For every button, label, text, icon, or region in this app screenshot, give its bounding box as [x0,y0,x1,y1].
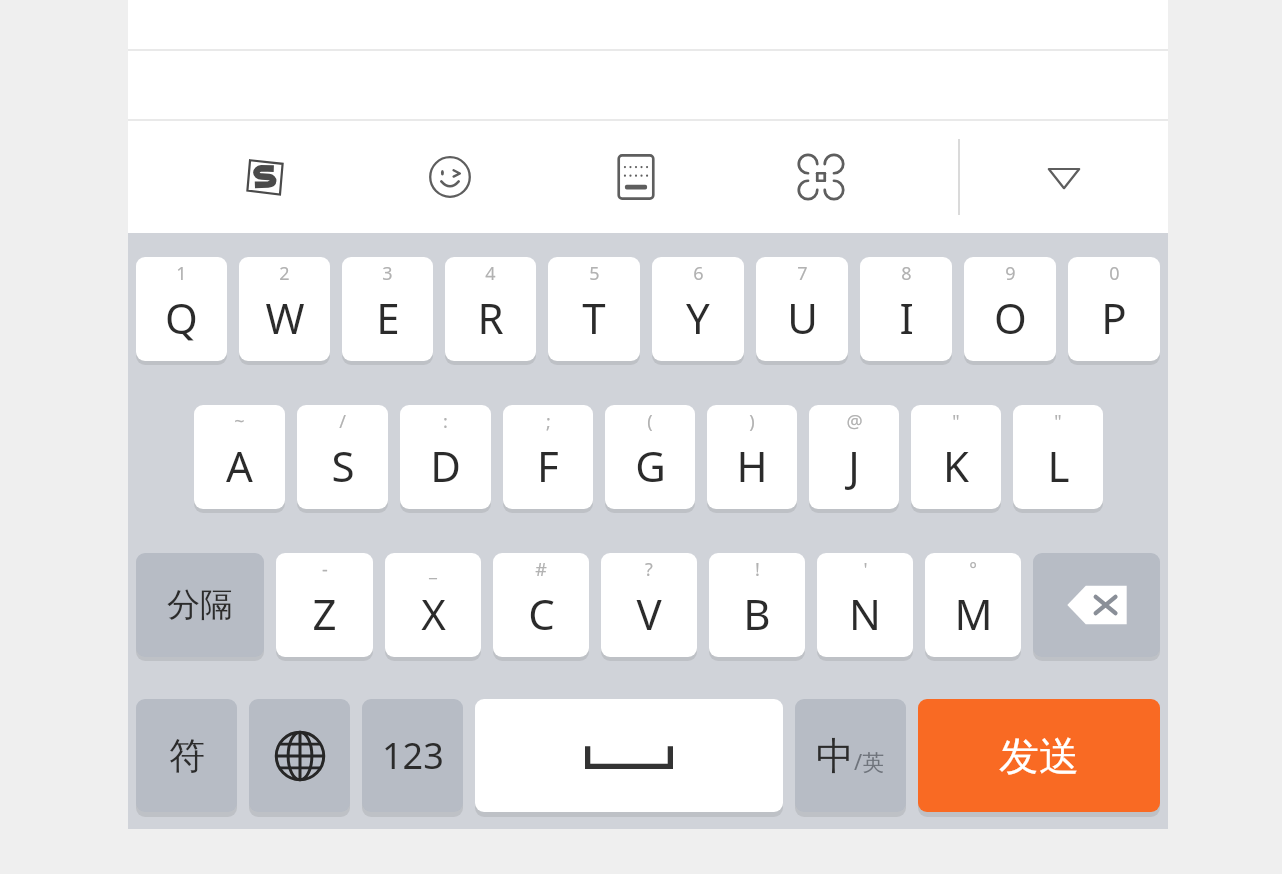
button[interactable]: Sogou input method [217,129,313,225]
button[interactable]: 7 [756,257,848,361]
staticText: V [636,585,662,642]
staticText: ) [749,409,755,434]
button[interactable]: 8 [860,257,952,361]
staticText: 1 [176,261,187,286]
button[interactable]: 9 [964,257,1056,361]
staticText: R [477,289,504,346]
button[interactable]: ; [503,405,593,509]
staticText: Q [165,289,198,346]
button[interactable]: 发送 [918,699,1160,812]
button[interactable]: Backspace [1033,553,1160,657]
button[interactable]: " [911,405,1001,509]
staticText: K [943,437,969,494]
button[interactable]: 0 [1068,257,1160,361]
staticText: S [331,437,355,494]
button[interactable]: Switch language [249,699,350,812]
button[interactable]: 符 [136,699,237,812]
staticText: " [1054,409,1062,434]
staticText: L [1047,437,1070,494]
staticText: _ [429,557,437,582]
button[interactable]: : [400,405,491,509]
button[interactable]: ? [601,553,697,657]
button[interactable]: 123 [362,699,463,812]
button[interactable]: ~ [194,405,285,509]
staticText: E [376,289,400,346]
staticText: Y [686,289,710,346]
button[interactable]: 1 [136,257,227,361]
staticText: 7 [797,261,808,286]
staticText: C [528,585,555,642]
staticText: 4 [485,261,496,286]
staticText: : [443,409,448,434]
staticText: 分隔 [167,584,233,626]
button[interactable]: ( [605,405,695,509]
staticText: J [848,437,860,494]
staticText: N [849,585,881,642]
staticText: ° [969,557,977,582]
button[interactable]: ) [707,405,797,509]
staticText: X [421,585,446,642]
staticText: " [952,409,960,434]
button[interactable]: 4 [445,257,536,361]
button[interactable]: Hide keyboard [1016,129,1112,225]
button[interactable]: 5 [548,257,640,361]
staticText: ' [863,557,868,582]
staticText: ? [645,557,653,582]
button[interactable]: 2 [239,257,330,361]
staticText: 123 [382,731,444,780]
button[interactable]: ° [925,553,1021,657]
staticText: 5 [589,261,600,286]
button[interactable]: ! [709,553,805,657]
staticText: G [635,437,666,494]
button[interactable]: 3 [342,257,433,361]
button[interactable]: # [493,553,589,657]
staticText: ! [755,557,760,582]
staticText: 2 [279,261,290,286]
button[interactable]: ' [817,553,913,657]
staticText: 中 [816,732,854,780]
button[interactable]: / [297,405,388,509]
button[interactable]: Chinese English toggle [795,699,906,812]
staticText: ( [647,409,653,434]
staticText: ; [546,409,551,434]
staticText: D [430,437,461,494]
button[interactable]: 6 [652,257,744,361]
staticText: A [226,437,253,494]
staticText: I [899,289,914,346]
staticText: W [265,289,305,346]
button[interactable]: More functions [773,129,869,225]
staticText: /英 [854,746,885,776]
staticText: Z [312,585,337,642]
staticText: P [1101,289,1127,346]
staticText: T [582,289,606,346]
staticText: 8 [901,261,912,286]
staticText: O [994,289,1027,346]
staticText: / [339,409,346,434]
button[interactable]: - [276,553,373,657]
staticText: H [736,437,768,494]
button[interactable]: Space [475,699,783,812]
button[interactable]: Keyboard layout [588,129,684,225]
staticText: M [954,585,993,642]
staticText: 9 [1005,261,1016,286]
staticText: 3 [382,261,393,286]
button[interactable]: @ [809,405,899,509]
staticText: - [322,557,328,582]
staticText: U [787,289,818,346]
staticText: ~ [234,409,245,434]
staticText: 发送 [999,731,1079,781]
staticText: # [535,557,547,582]
staticText: 0 [1109,261,1120,286]
button[interactable]: 分隔 [136,553,264,657]
button[interactable]: " [1013,405,1103,509]
button[interactable]: Emoji [402,129,498,225]
staticText: 6 [693,261,704,286]
staticText: 符 [169,733,205,778]
button[interactable]: _ [385,553,481,657]
staticText: F [537,437,559,494]
staticText: @ [846,409,863,434]
staticText: B [743,585,771,642]
